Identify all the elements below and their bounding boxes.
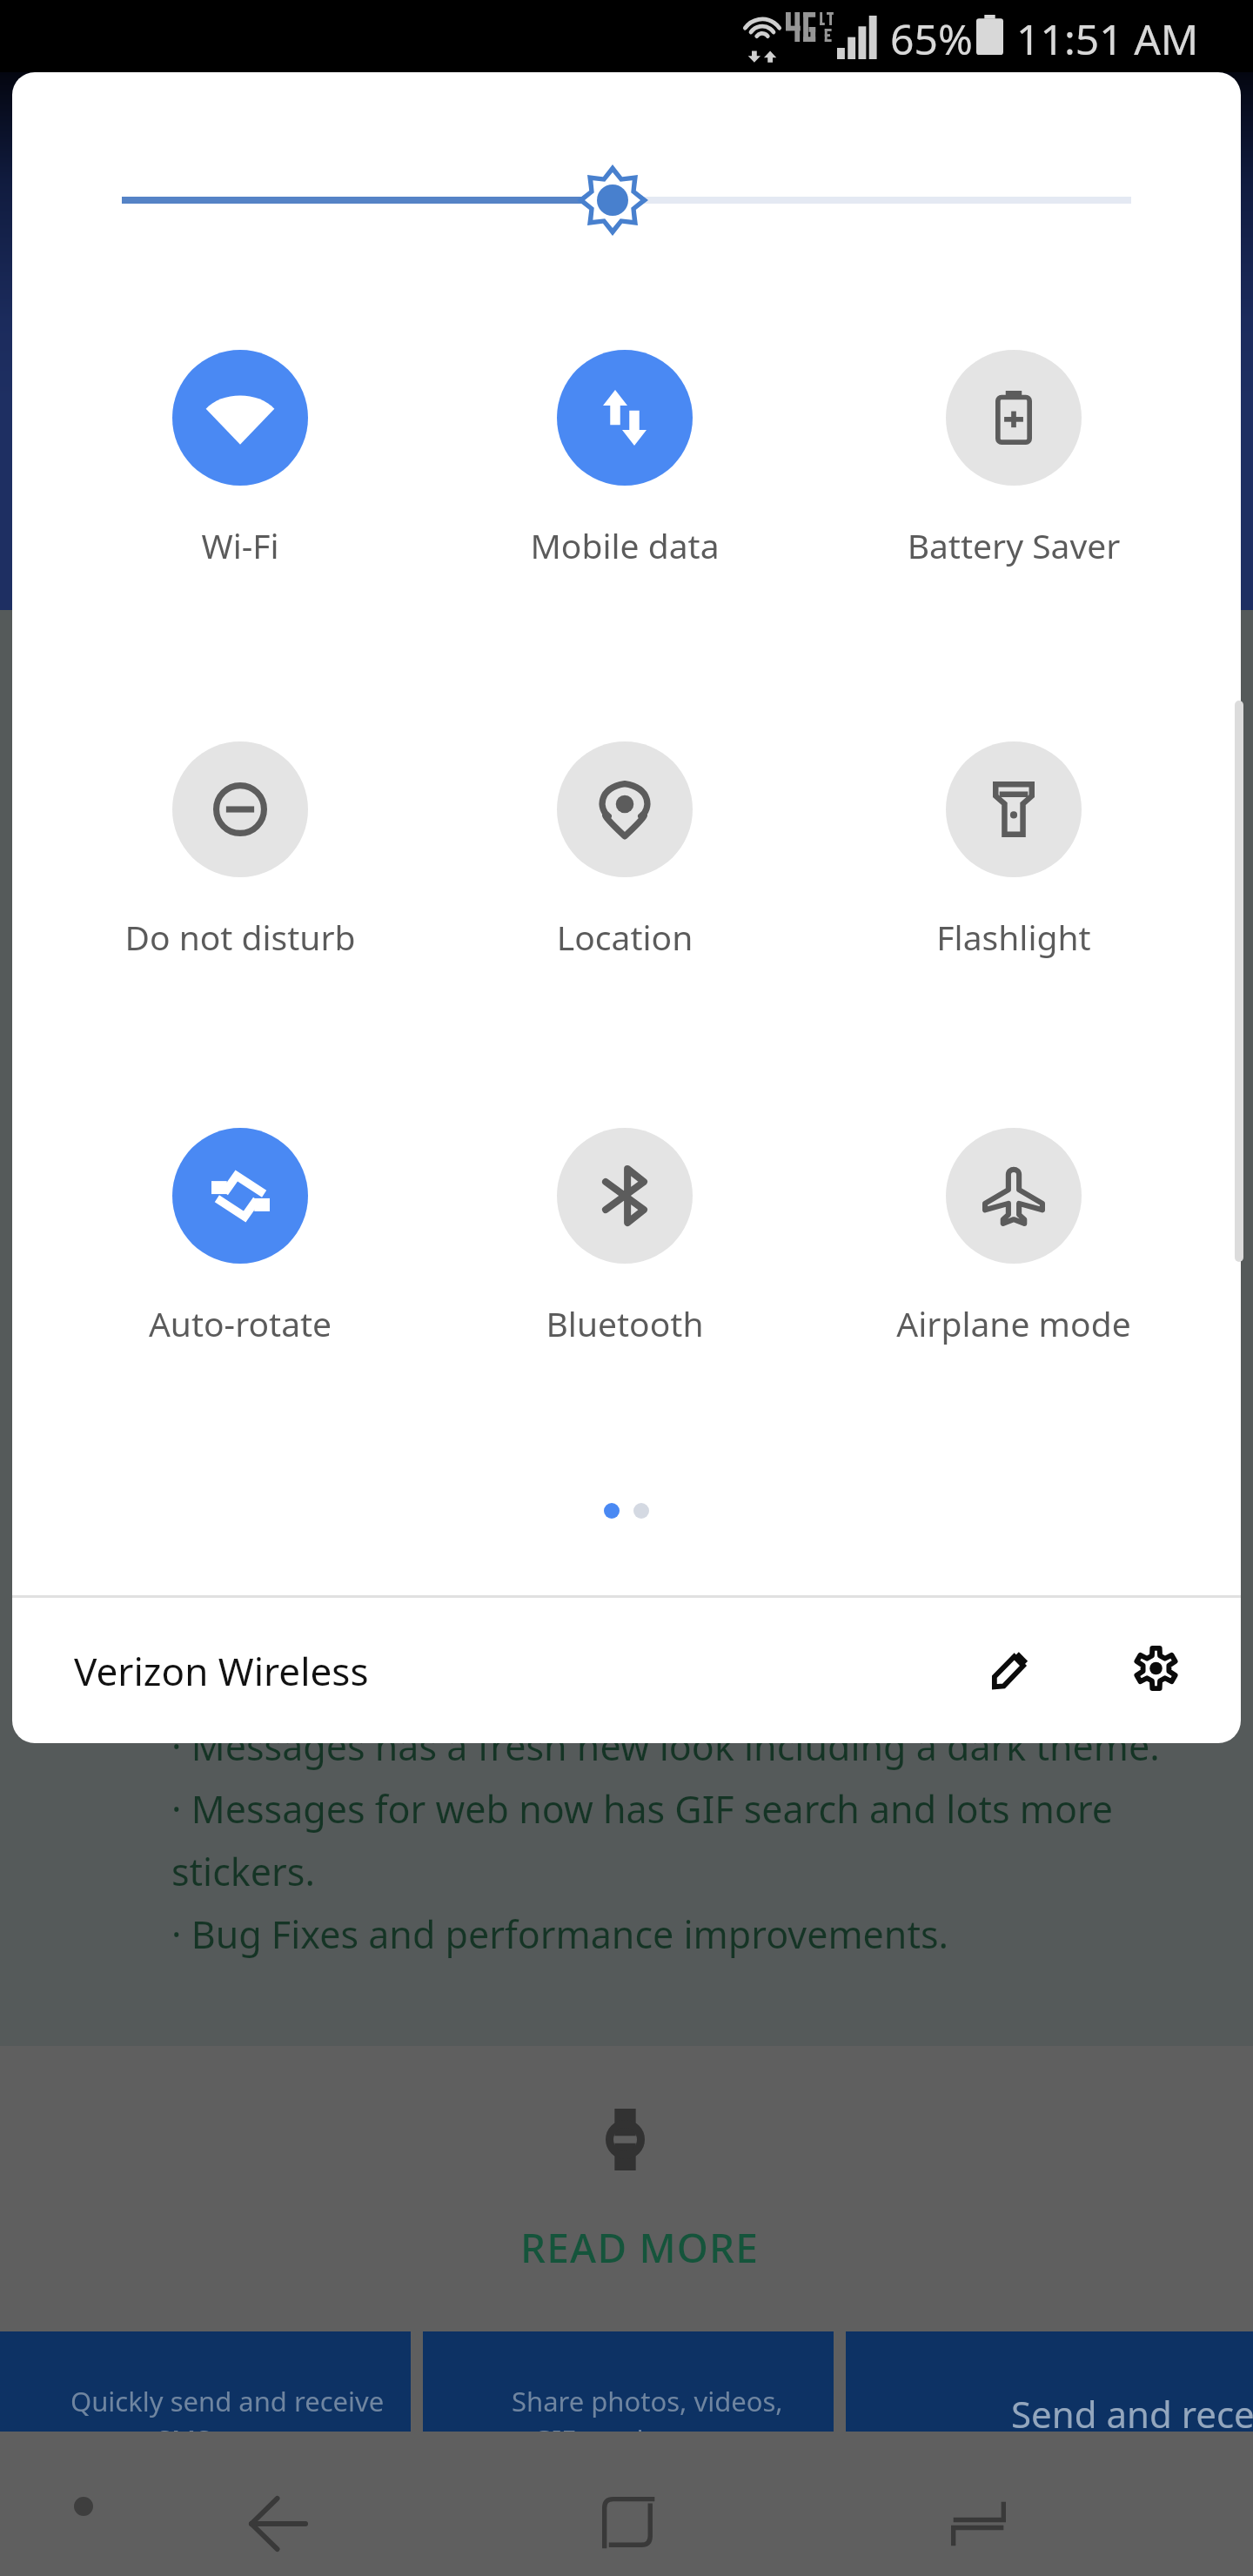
staticText: Mobile data (451, 522, 799, 568)
staticText: stickers. (171, 1846, 315, 1897)
button[interactable]: Do not disturb (66, 741, 414, 960)
staticText: Verizon Wireless (74, 1645, 369, 1697)
staticText: Location (451, 914, 799, 960)
staticText: Do not disturb (66, 914, 414, 960)
button[interactable]: Wi-Fi (66, 350, 414, 568)
staticText: · Bug Fixes and performance improvements… (171, 1909, 949, 1960)
button[interactable]: Location (451, 741, 799, 960)
staticText: READ MORE (520, 2220, 760, 2275)
staticText: Bluetooth (451, 1300, 799, 1346)
button[interactable]: Battery Saver (840, 350, 1188, 568)
staticText: 11:51 AM (1016, 10, 1199, 67)
staticText: · Messages for web now has GIF search an… (171, 1783, 1114, 1835)
button[interactable]: Flashlight (840, 741, 1188, 960)
button[interactable]: Bluetooth (451, 1128, 799, 1346)
staticText: 65% (890, 10, 973, 67)
button[interactable]: Recents (919, 2465, 1037, 2576)
staticText: Send and rece (1011, 2389, 1253, 2438)
staticText: Auto-rotate (66, 1300, 414, 1346)
staticText: Airplane mode (840, 1300, 1188, 1346)
staticText: Wi-Fi (66, 522, 414, 568)
button[interactable]: Home (570, 2465, 688, 2576)
button[interactable]: Settings (1108, 1620, 1203, 1716)
staticText: · Messages has a fresh new look includin… (171, 1721, 1160, 1772)
staticText: SMS (157, 2421, 211, 2458)
button[interactable]: Auto-rotate (66, 1128, 414, 1346)
button[interactable]: Airplane mode (840, 1128, 1188, 1346)
button[interactable]: Mobile data (451, 350, 799, 568)
staticText: Flashlight (840, 914, 1188, 960)
staticText: Battery Saver (840, 522, 1188, 568)
button[interactable]: Menu (63, 2485, 104, 2527)
button[interactable]: Back (219, 2465, 338, 2576)
staticText: Quickly send and receive (70, 2383, 385, 2419)
button[interactable]: Edit (962, 1621, 1057, 1717)
staticText: Share photos, videos, (512, 2383, 783, 2419)
staticText: GIFs and more (533, 2421, 719, 2458)
